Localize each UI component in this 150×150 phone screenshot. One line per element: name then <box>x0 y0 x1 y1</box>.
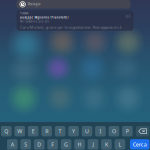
button[interactable]: L <box>115 139 125 150</box>
staticText: L <box>118 141 121 148</box>
button[interactable]: G <box>61 139 71 150</box>
staticText: ieri <box>125 15 130 18</box>
button[interactable]: S <box>20 139 31 150</box>
button[interactable]: E <box>28 126 38 136</box>
button[interactable]: Delete <box>136 126 149 136</box>
staticText: H <box>77 141 81 148</box>
button[interactable]: H <box>74 139 85 150</box>
staticText: K <box>105 141 108 148</box>
button[interactable]: P <box>122 126 133 136</box>
button[interactable]: POESIA <box>16 10 133 31</box>
button[interactable]: O <box>109 126 119 136</box>
button[interactable]: U <box>82 126 92 136</box>
button[interactable]: Cerca <box>130 139 149 150</box>
staticText: Y <box>72 128 75 135</box>
button[interactable]: K <box>101 139 112 150</box>
button[interactable]: R <box>41 126 52 136</box>
button[interactable]: T <box>55 126 65 136</box>
button[interactable]: I <box>95 126 106 136</box>
staticText: Giuseppe Migliorino (Pianoforte) <box>19 16 68 19</box>
button[interactable]: D <box>34 139 44 150</box>
button[interactable]: J <box>88 139 98 150</box>
staticText: E <box>32 128 35 135</box>
staticText: Q <box>4 128 8 135</box>
button[interactable]: F <box>47 139 58 150</box>
staticText: Caro Michele, grazie per la segnalazione… <box>19 24 121 30</box>
staticText: P <box>126 128 129 135</box>
staticText: S <box>24 141 27 148</box>
staticText: Cerca <box>133 141 147 148</box>
button[interactable]: Y <box>68 126 79 136</box>
staticText: R <box>45 128 48 135</box>
staticText: W <box>17 128 22 135</box>
staticText: O <box>112 128 116 135</box>
staticText: I <box>99 128 101 135</box>
staticText: F <box>51 141 54 148</box>
staticText: G <box>64 141 68 148</box>
staticText: J <box>92 141 93 148</box>
button[interactable]: Q <box>1 126 12 136</box>
staticText: A <box>11 141 14 148</box>
staticText: T <box>59 128 62 135</box>
staticText: Nel Giardino più celi <box>19 20 49 23</box>
button[interactable]: W <box>14 126 25 136</box>
button[interactable]: A <box>7 139 18 150</box>
staticText: Orologio <box>28 2 41 6</box>
staticText: D <box>37 141 41 148</box>
staticText: POESIA <box>19 11 28 15</box>
button[interactable]: Orologio <box>16 0 130 9</box>
staticText: U <box>85 128 89 135</box>
